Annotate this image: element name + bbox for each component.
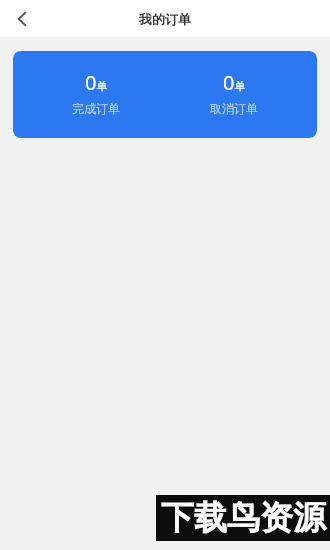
staticText: 下载鸟资源 — [161, 497, 326, 539]
staticText: 完成订单 — [72, 101, 120, 116]
staticText: 0单 — [85, 69, 108, 96]
staticText: 0单 — [223, 69, 246, 96]
button[interactable]: 0单 — [165, 69, 303, 116]
button[interactable]: 0单 — [27, 69, 165, 116]
button[interactable] — [9, 6, 35, 32]
staticText: 我的订单 — [139, 11, 191, 27]
staticText: 取消订单 — [210, 101, 258, 116]
